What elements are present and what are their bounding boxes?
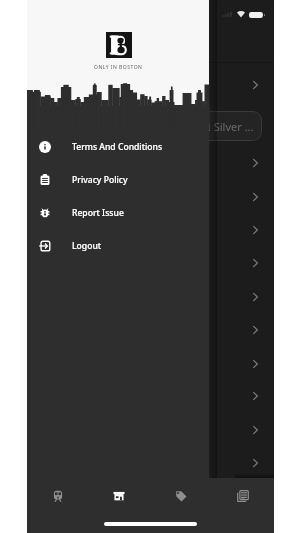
button[interactable] bbox=[27, 213, 274, 246]
staticText: Logout bbox=[72, 240, 102, 252]
staticText: ONLY IN BOSTON bbox=[94, 64, 143, 71]
button[interactable]: Privacy Policy bbox=[27, 163, 209, 196]
button[interactable]: Terms And Conditions bbox=[27, 130, 209, 163]
staticText: Terms And Conditions bbox=[72, 141, 163, 153]
button[interactable] bbox=[27, 246, 274, 279]
button[interactable] bbox=[27, 280, 274, 313]
button[interactable] bbox=[27, 413, 274, 446]
button[interactable] bbox=[27, 180, 274, 213]
button[interactable] bbox=[27, 446, 274, 479]
button[interactable]: Transit bbox=[27, 478, 88, 514]
staticText: Privacy Policy bbox=[72, 174, 128, 186]
button[interactable] bbox=[27, 347, 274, 380]
button[interactable] bbox=[27, 379, 274, 412]
button[interactable]: Deals bbox=[150, 478, 212, 514]
staticText: Report Issue bbox=[72, 207, 124, 219]
button[interactable]: Gold and Silver ... bbox=[156, 111, 262, 141]
button[interactable]: News bbox=[212, 478, 274, 514]
button[interactable] bbox=[27, 146, 274, 179]
button[interactable]: Shops bbox=[88, 478, 150, 514]
button[interactable] bbox=[27, 313, 274, 346]
staticText: Gold and Silver ... bbox=[164, 119, 254, 134]
button[interactable]: Report Issue bbox=[27, 196, 209, 229]
button[interactable] bbox=[27, 63, 274, 106]
button[interactable]: Logout bbox=[27, 229, 209, 262]
